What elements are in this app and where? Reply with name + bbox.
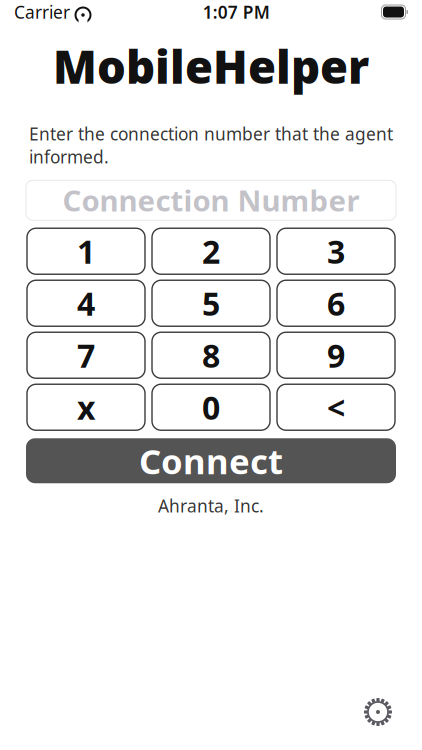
staticText: < xyxy=(327,386,345,428)
staticText: MobileHelper xyxy=(53,36,369,96)
button[interactable]: 6 xyxy=(277,280,395,326)
button[interactable]: 5 xyxy=(152,280,270,326)
staticText: 7 xyxy=(77,334,95,376)
staticText: Connection Number xyxy=(62,181,359,220)
staticText: 4 xyxy=(77,282,95,324)
staticText: Enter the connection number that the age… xyxy=(29,122,393,168)
button[interactable]: 0 xyxy=(152,384,270,430)
staticText: 6 xyxy=(327,282,345,324)
staticText: Connect xyxy=(139,438,283,484)
button[interactable]: 7 xyxy=(27,332,145,378)
button[interactable]: 8 xyxy=(152,332,270,378)
staticText: Ahranta, Inc. xyxy=(158,494,264,517)
button[interactable]: 9 xyxy=(277,332,395,378)
staticText: 1:07 PM xyxy=(203,0,270,23)
staticText: x xyxy=(77,386,95,428)
staticText: 3 xyxy=(327,230,345,272)
button[interactable]: x xyxy=(27,384,145,430)
button[interactable]: 3 xyxy=(277,228,395,274)
staticText: 0 xyxy=(202,386,220,428)
staticText: Carrier xyxy=(14,0,70,23)
button[interactable]: < xyxy=(277,384,395,430)
staticText: 2 xyxy=(202,230,220,272)
staticText: 5 xyxy=(202,282,220,324)
staticText: 8 xyxy=(202,334,220,376)
staticText: 9 xyxy=(327,334,345,376)
button[interactable]: 1 xyxy=(27,228,145,274)
button[interactable]: Connect xyxy=(26,438,396,483)
staticText: 1 xyxy=(77,230,95,272)
button[interactable]: 4 xyxy=(27,280,145,326)
button[interactable]: 2 xyxy=(152,228,270,274)
button[interactable]: Settings xyxy=(363,697,393,727)
button[interactable]: Connection Number xyxy=(26,180,396,220)
